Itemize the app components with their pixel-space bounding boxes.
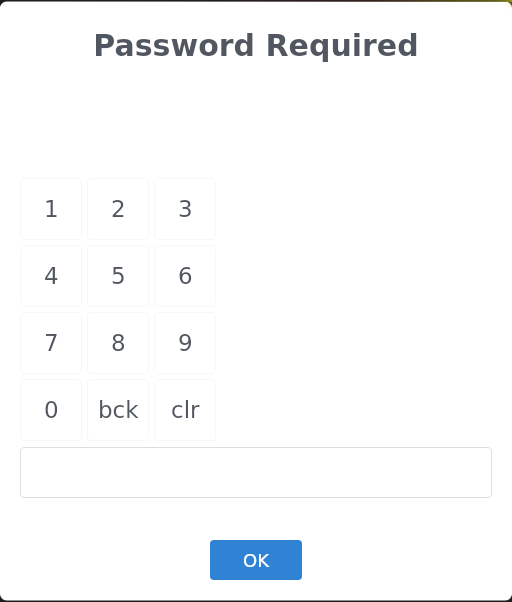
button[interactable]: 1 xyxy=(20,178,82,240)
staticText: 1 xyxy=(44,196,59,223)
staticText: 6 xyxy=(178,263,193,290)
staticText: 8 xyxy=(111,330,126,357)
button[interactable]: bck xyxy=(87,379,149,441)
button[interactable]: 3 xyxy=(154,178,216,240)
staticText: 4 xyxy=(44,263,59,290)
staticText: 2 xyxy=(111,196,126,223)
button[interactable]: Password entry field xyxy=(20,447,492,498)
staticText: 7 xyxy=(44,330,59,357)
button[interactable]: 0 xyxy=(20,379,82,441)
button[interactable]: 6 xyxy=(154,245,216,307)
button[interactable]: clr xyxy=(154,379,216,441)
staticText: clr xyxy=(171,397,200,424)
staticText: OK xyxy=(243,550,269,571)
button[interactable]: OK xyxy=(210,540,302,580)
staticText: 0 xyxy=(44,397,59,424)
button[interactable]: 9 xyxy=(154,312,216,374)
button[interactable]: 4 xyxy=(20,245,82,307)
staticText: 3 xyxy=(178,196,193,223)
staticText: 5 xyxy=(111,263,126,290)
button[interactable]: 8 xyxy=(87,312,149,374)
button[interactable]: 5 xyxy=(87,245,149,307)
staticText: bck xyxy=(98,397,139,424)
button[interactable]: 7 xyxy=(20,312,82,374)
button[interactable]: 2 xyxy=(87,178,149,240)
staticText: 9 xyxy=(178,330,193,357)
staticText: Password Required xyxy=(93,28,419,63)
